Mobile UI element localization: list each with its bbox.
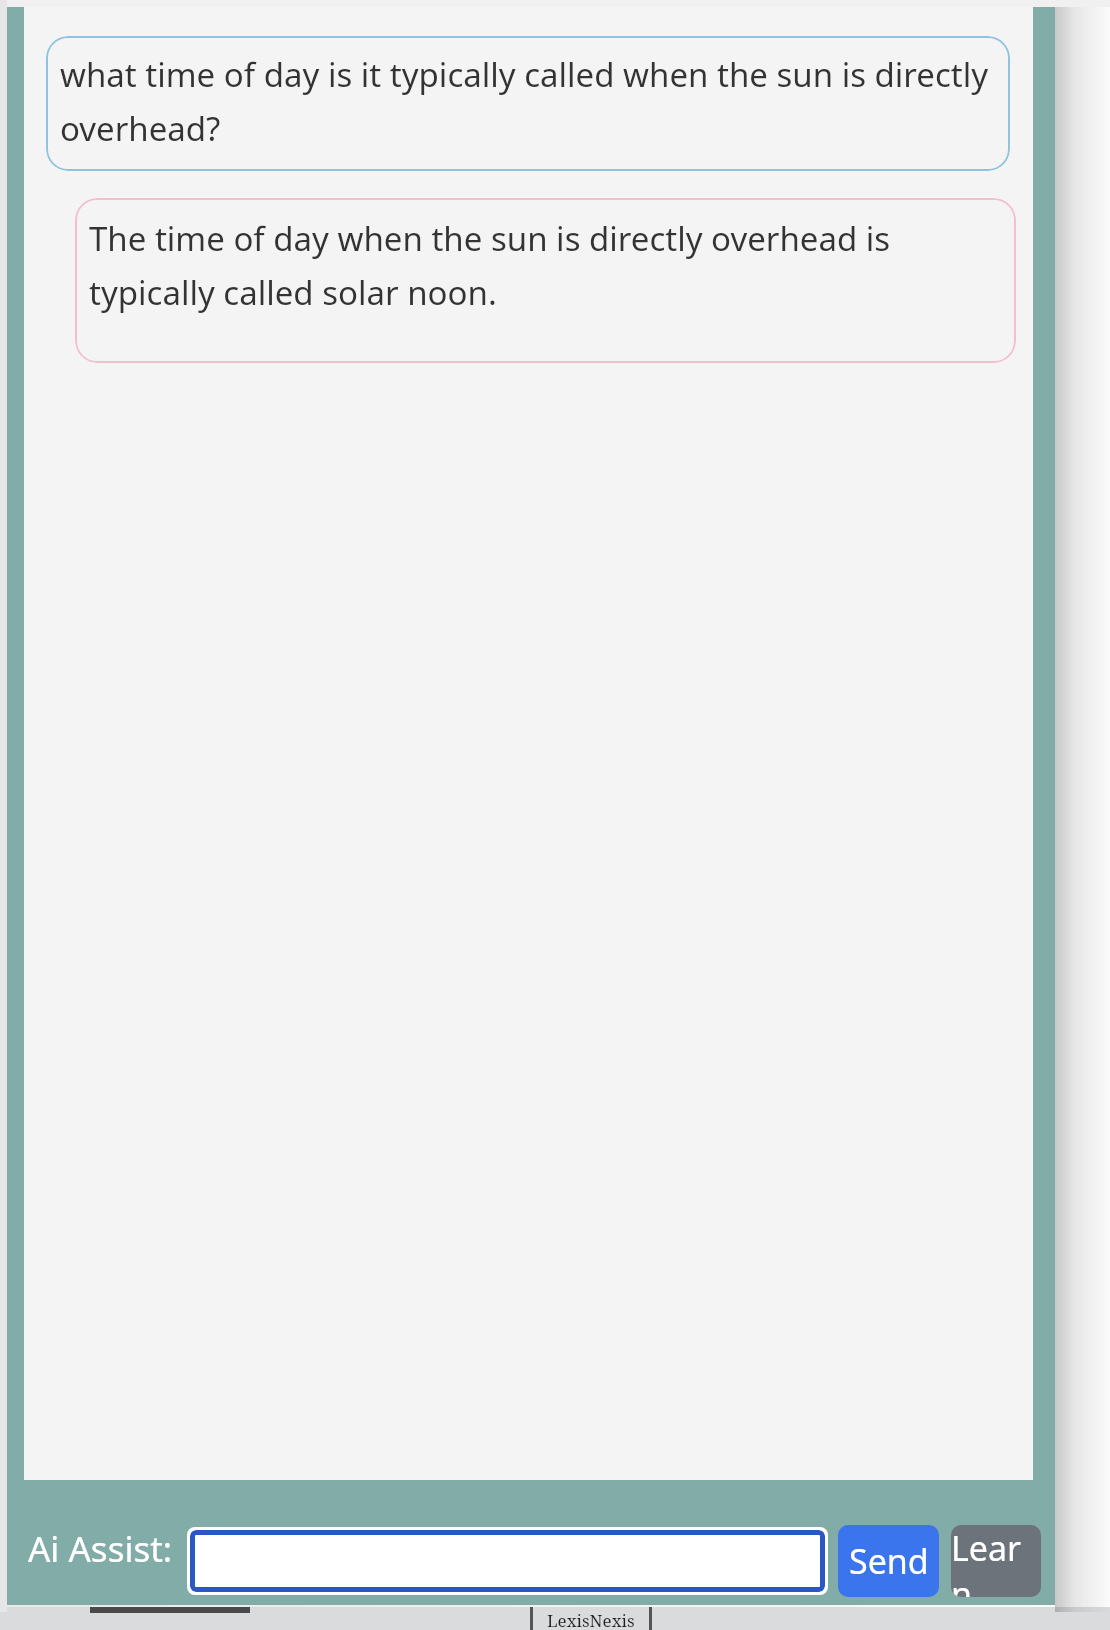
- staticText: Learn: [951, 1525, 1041, 1597]
- staticText: LexisNexis: [547, 1609, 635, 1630]
- staticText: Send: [849, 1538, 929, 1584]
- staticText: Ai Assist:: [28, 1525, 173, 1573]
- button[interactable]: Send: [838, 1525, 939, 1597]
- staticText: The time of day when the sun is directly…: [89, 216, 1002, 315]
- button[interactable]: The time of day when the sun is directly…: [75, 198, 1016, 363]
- button[interactable]: Message input: [190, 1530, 825, 1592]
- staticText: what time of day is it typically called …: [60, 52, 996, 151]
- button[interactable]: what time of day is it typically called …: [46, 36, 1010, 171]
- button[interactable]: Learn: [951, 1525, 1041, 1597]
